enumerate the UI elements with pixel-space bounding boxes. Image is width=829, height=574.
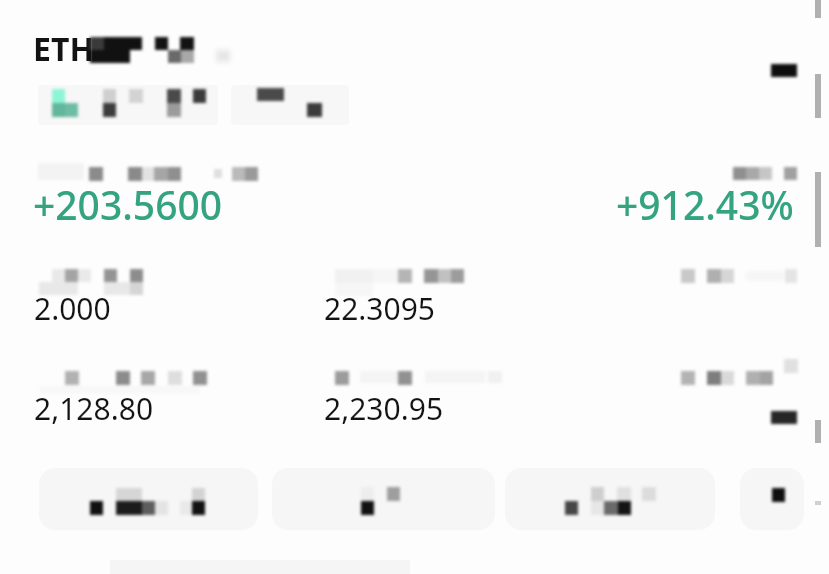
staticText: ETH bbox=[33, 27, 94, 71]
staticText: 2.000 bbox=[34, 288, 111, 329]
button[interactable]: Filter bbox=[505, 468, 715, 530]
button[interactable]: Tag bbox=[38, 85, 218, 125]
staticText: 22.3095 bbox=[324, 288, 435, 329]
staticText: +203.5600 bbox=[33, 178, 223, 231]
button[interactable]: Filter bbox=[39, 468, 258, 530]
staticText: +912.43% bbox=[616, 178, 794, 231]
staticText: 2,128.80 bbox=[34, 388, 154, 429]
button[interactable]: Tag bbox=[231, 85, 349, 125]
button[interactable]: Filter bbox=[272, 468, 495, 530]
button[interactable]: More bbox=[740, 468, 804, 530]
staticText: 2,230.95 bbox=[324, 388, 444, 429]
